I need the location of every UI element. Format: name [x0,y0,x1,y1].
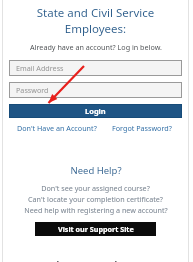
staticText: Already have an account? Log in below. [30,42,162,52]
staticText: Need Help? [70,164,122,177]
staticText: Visit our Support Site [58,224,134,234]
staticText: CalHR/SPB employees: [45,258,146,262]
button[interactable]: Password [9,82,182,98]
staticText: Don't Have an Account? [17,123,97,133]
button[interactable]: Don't Have an Account? [17,123,97,133]
button[interactable]: Email Address [9,60,182,76]
staticText: Need help with registering a new account… [24,205,168,215]
staticText: Forgot Password? [112,123,172,133]
staticText: Login [85,106,106,116]
button[interactable]: Visit our Support Site [35,222,156,236]
button[interactable]: Login [9,104,182,118]
staticText: Email Address [16,63,64,73]
staticText: Can't locate your completion certificate… [28,194,163,204]
staticText: Password [16,85,49,95]
staticText: Don't see your assigned course? [41,183,150,193]
button[interactable]: Forgot Password? [112,123,172,133]
staticText: State and Civil Service Employees: [9,5,182,37]
